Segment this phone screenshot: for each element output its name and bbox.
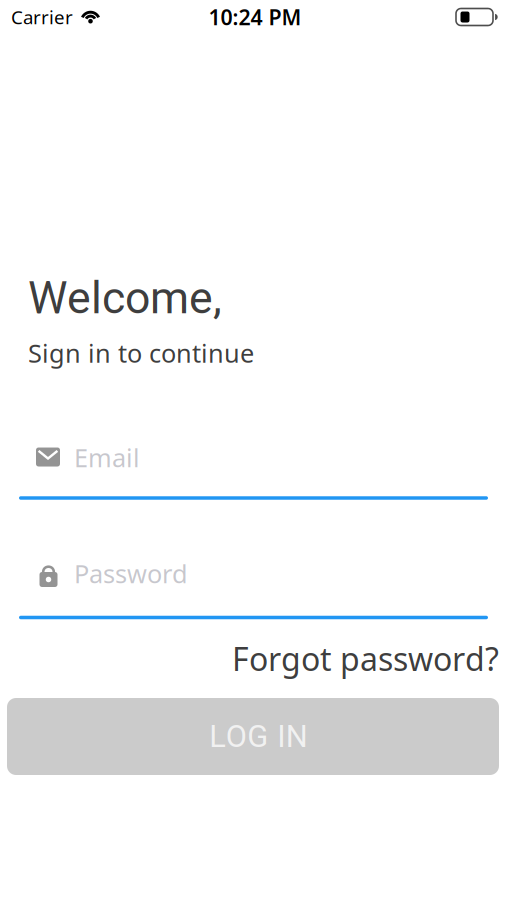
staticText: LOG IN: [209, 718, 308, 755]
staticText: Welcome,: [28, 272, 222, 324]
button[interactable]: LOG IN: [7, 698, 499, 775]
staticText: Password: [74, 557, 188, 590]
staticText: 10:24 PM: [208, 3, 301, 31]
staticText: Email: [74, 441, 140, 474]
button[interactable]: Password: [0, 529, 506, 621]
button[interactable]: Forgot password?: [0, 637, 506, 680]
staticText: Forgot password?: [232, 637, 499, 680]
staticText: Sign in to continue: [28, 336, 254, 370]
button[interactable]: Email: [0, 412, 506, 504]
staticText: Carrier: [11, 5, 73, 29]
